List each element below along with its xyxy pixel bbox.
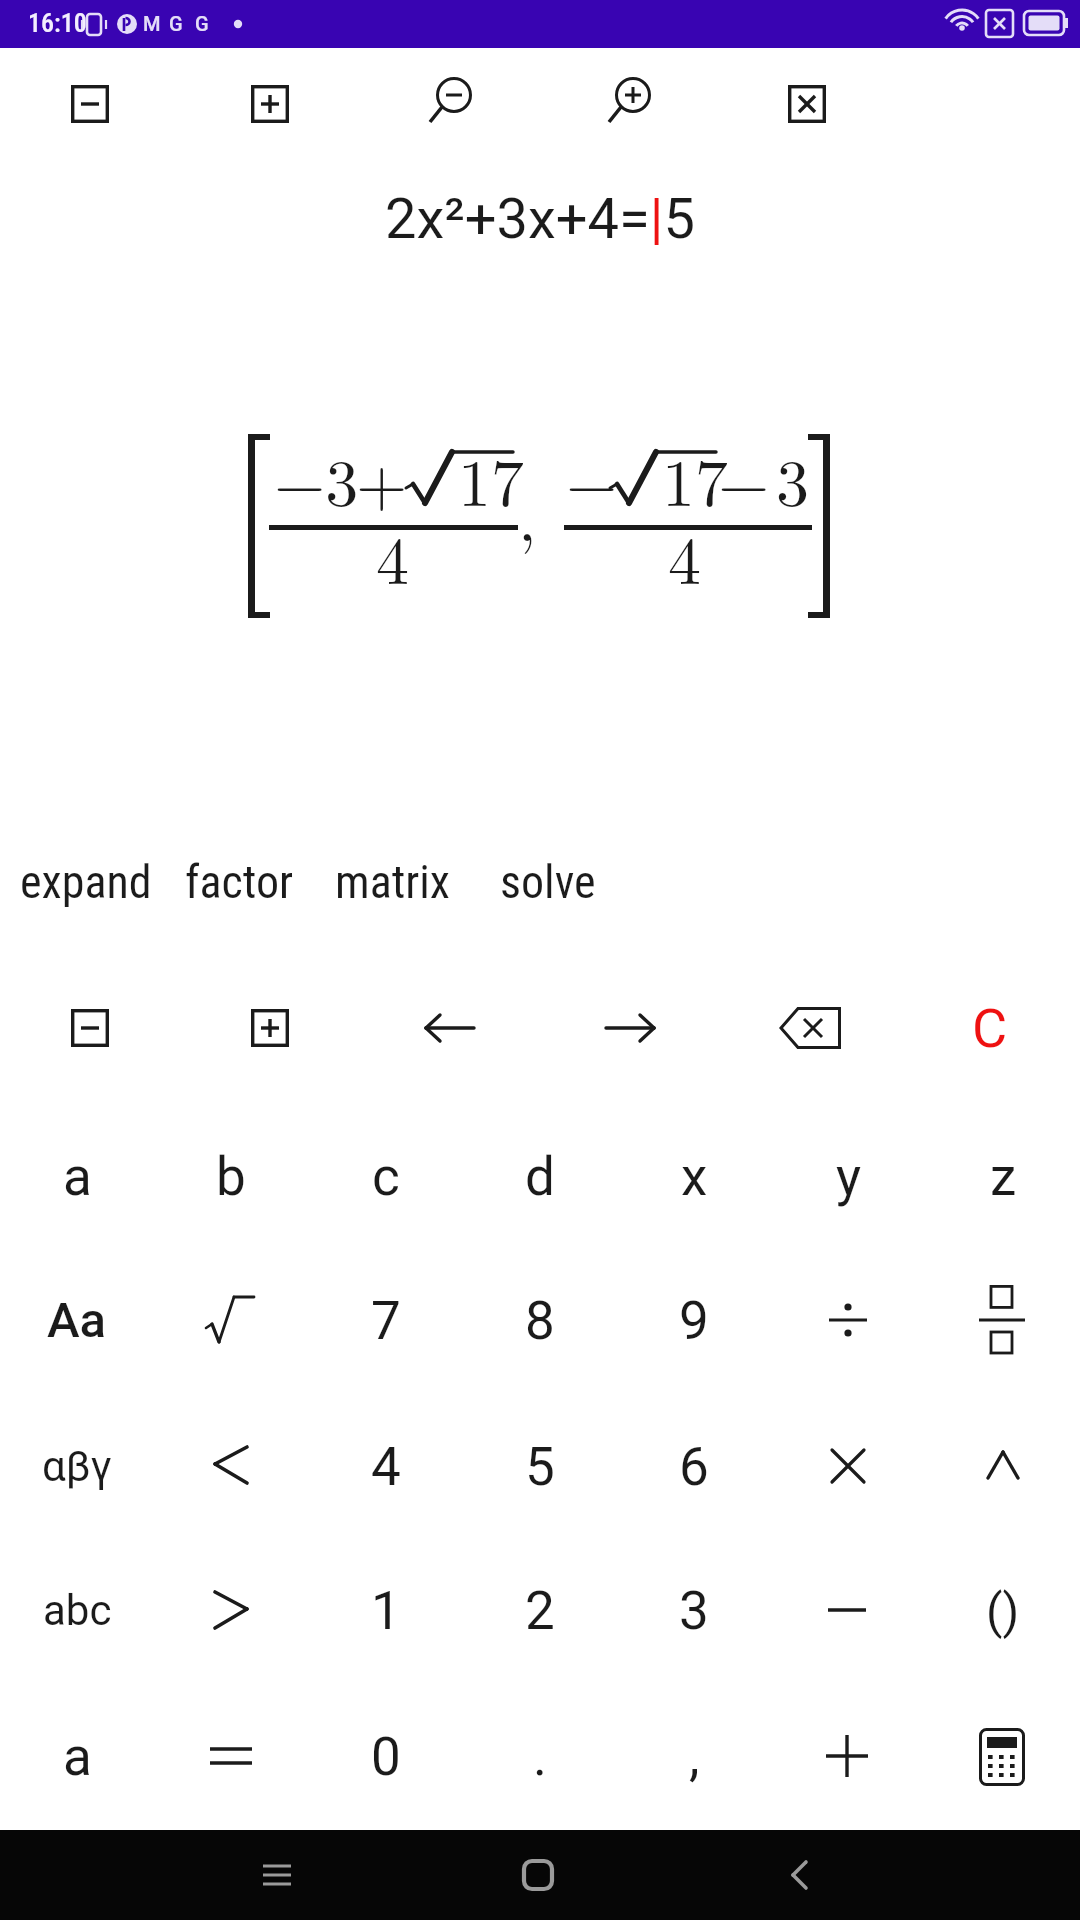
button[interactable] bbox=[251, 85, 289, 123]
button[interactable]: c bbox=[309, 1104, 463, 1249]
staticText: 17 bbox=[458, 432, 524, 526]
staticText: . bbox=[533, 1726, 547, 1788]
button[interactable]: expand bbox=[20, 855, 152, 909]
button[interactable] bbox=[237, 1835, 317, 1915]
staticText: 4 bbox=[376, 510, 409, 604]
staticText: 3 bbox=[776, 432, 809, 526]
staticText: 2 bbox=[525, 1580, 555, 1642]
button[interactable]: a bbox=[0, 1104, 154, 1249]
staticText: d bbox=[525, 1146, 555, 1208]
button[interactable] bbox=[71, 85, 109, 123]
staticText: G bbox=[169, 12, 183, 35]
button[interactable] bbox=[498, 1835, 578, 1915]
button[interactable]: αβγ bbox=[0, 1394, 154, 1539]
staticText: 6 bbox=[679, 1436, 709, 1498]
button[interactable] bbox=[788, 85, 826, 123]
button[interactable]: 1 bbox=[309, 1538, 463, 1683]
button[interactable] bbox=[71, 1009, 109, 1047]
staticText: C bbox=[972, 997, 1008, 1060]
button[interactable]: matrix bbox=[335, 855, 451, 909]
staticText: 9 bbox=[679, 1290, 709, 1352]
button[interactable]: , bbox=[617, 1684, 771, 1829]
button[interactable]: solve bbox=[500, 855, 596, 909]
staticText: , bbox=[518, 467, 537, 561]
button[interactable]: 2 bbox=[463, 1538, 617, 1683]
button[interactable] bbox=[251, 1009, 289, 1047]
button[interactable]: x bbox=[617, 1104, 771, 1249]
button[interactable]: y bbox=[772, 1104, 926, 1249]
button[interactable] bbox=[979, 1728, 1025, 1786]
staticText: αβγ bbox=[42, 1442, 112, 1491]
button[interactable]: C bbox=[913, 956, 1067, 1101]
button[interactable]: 3 bbox=[617, 1538, 771, 1683]
button[interactable] bbox=[986, 1450, 1020, 1480]
button[interactable]: factor bbox=[185, 855, 294, 909]
staticText: () bbox=[986, 1583, 1020, 1639]
button[interactable] bbox=[424, 75, 476, 133]
button[interactable] bbox=[213, 1590, 249, 1630]
button[interactable] bbox=[603, 75, 655, 133]
button[interactable]: 0 bbox=[309, 1684, 463, 1829]
button[interactable]: 6 bbox=[617, 1394, 771, 1539]
button[interactable]: 9 bbox=[617, 1248, 771, 1393]
button[interactable] bbox=[826, 1735, 868, 1777]
button[interactable]: 4 bbox=[309, 1394, 463, 1539]
staticText: y bbox=[836, 1146, 862, 1208]
staticText: − bbox=[718, 432, 770, 526]
staticText: 16:10 bbox=[28, 8, 87, 38]
staticText: G bbox=[195, 12, 209, 35]
staticText: , bbox=[689, 1726, 700, 1788]
staticText: x bbox=[681, 1146, 708, 1208]
button[interactable]: Aa bbox=[0, 1248, 154, 1393]
staticText: 3 bbox=[679, 1580, 709, 1642]
staticText: c bbox=[372, 1146, 400, 1208]
staticText: a bbox=[63, 1146, 92, 1208]
button[interactable] bbox=[760, 1835, 840, 1915]
button[interactable] bbox=[210, 1746, 252, 1766]
staticText: 2x²+3x+4=|5 bbox=[385, 186, 695, 252]
button[interactable] bbox=[206, 1294, 256, 1346]
button[interactable] bbox=[604, 1013, 656, 1043]
button[interactable]: 5 bbox=[463, 1394, 617, 1539]
staticText: 7 bbox=[371, 1290, 401, 1352]
staticText: 0 bbox=[371, 1726, 401, 1788]
staticText: M bbox=[143, 12, 161, 35]
staticText: 1 bbox=[371, 1580, 401, 1642]
staticText: a bbox=[63, 1726, 92, 1788]
button[interactable]: () bbox=[926, 1538, 1080, 1683]
staticText: 4 bbox=[371, 1436, 401, 1498]
staticText: 17 bbox=[662, 432, 728, 526]
staticText: − bbox=[566, 432, 618, 526]
staticText: 4 bbox=[668, 510, 701, 604]
button[interactable]: . bbox=[463, 1684, 617, 1829]
button[interactable]: a bbox=[0, 1684, 154, 1829]
button[interactable]: 7 bbox=[309, 1248, 463, 1393]
staticText: + bbox=[356, 432, 408, 526]
button[interactable] bbox=[828, 1608, 866, 1613]
staticText: −3 bbox=[274, 432, 359, 526]
button[interactable] bbox=[830, 1448, 866, 1484]
staticText: abc bbox=[43, 1586, 112, 1635]
staticText: 8 bbox=[525, 1290, 555, 1352]
staticText: Aa bbox=[47, 1292, 107, 1349]
staticText: z bbox=[990, 1146, 1017, 1208]
button[interactable]: z bbox=[926, 1104, 1080, 1249]
button[interactable]: 8 bbox=[463, 1248, 617, 1393]
button[interactable] bbox=[213, 1445, 249, 1485]
staticText: 5 bbox=[525, 1436, 555, 1498]
button[interactable] bbox=[424, 1013, 476, 1043]
button[interactable] bbox=[781, 1007, 841, 1049]
button[interactable]: abc bbox=[0, 1538, 154, 1683]
button[interactable] bbox=[826, 1298, 870, 1342]
button[interactable]: d bbox=[463, 1104, 617, 1249]
staticText: b bbox=[216, 1146, 246, 1208]
button[interactable]: b bbox=[154, 1104, 308, 1249]
button[interactable] bbox=[978, 1285, 1026, 1355]
